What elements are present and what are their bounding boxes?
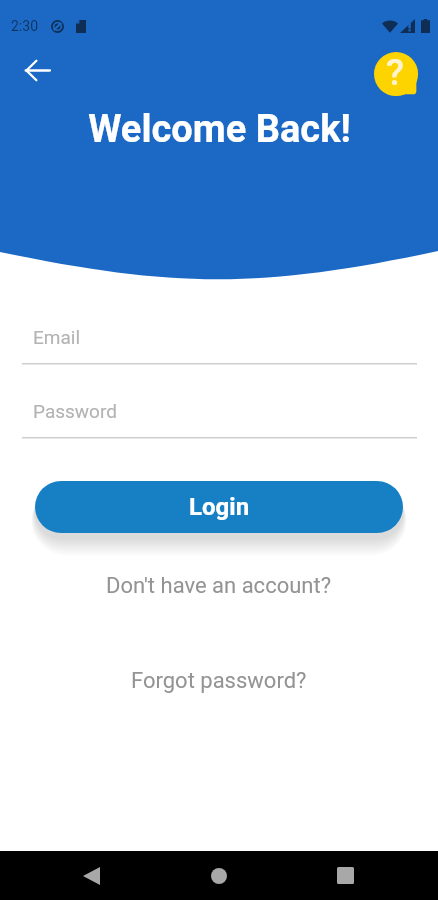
staticText: ? [386, 51, 405, 94]
button[interactable]: Don't have an account? [94, 566, 344, 606]
button[interactable]: Login [35, 481, 403, 533]
button[interactable]: Recent apps [318, 851, 373, 900]
button[interactable]: Home [191, 851, 247, 900]
staticText: Email [33, 326, 81, 348]
staticText: Password [33, 400, 117, 422]
staticText: Login [189, 493, 250, 521]
button[interactable]: Back [64, 851, 119, 900]
staticText: Don't have an account? [106, 573, 332, 599]
staticText: Welcome Back! [88, 107, 351, 152]
staticText: Forgot password? [131, 668, 307, 694]
button[interactable]: Password [22, 392, 417, 437]
button[interactable]: Forgot password? [119, 661, 319, 701]
button[interactable]: Back [16, 49, 58, 91]
staticText: 2:30 [11, 18, 38, 34]
button[interactable]: Help [374, 52, 419, 97]
button[interactable]: Email [22, 318, 417, 363]
